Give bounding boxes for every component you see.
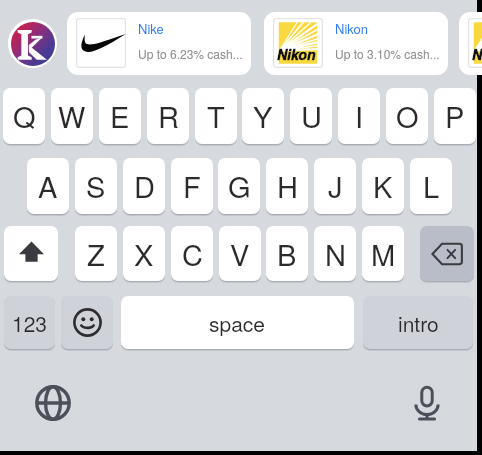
staticText: intro [398,308,439,338]
button[interactable]: P [434,88,476,144]
staticText: D [134,165,155,207]
button[interactable]: B [266,226,308,281]
staticText: U [301,95,322,137]
button[interactable]: U [290,88,332,144]
staticText: Nikon [277,44,316,64]
button[interactable]: V [219,226,261,281]
button[interactable]: Nike [67,12,251,75]
staticText: T [207,95,225,137]
button[interactable]: Nikon [459,12,482,75]
staticText: O [396,95,419,137]
staticText: W [58,95,86,137]
staticText: 123 [12,308,48,338]
staticText: M [371,233,396,275]
staticText: L [423,165,440,207]
button[interactable]: Backspace [420,226,474,281]
staticText: G [228,165,251,207]
button[interactable]: Q [3,88,45,144]
button[interactable]: Dictation [404,380,450,426]
staticText: I [355,95,364,137]
staticText: J [328,165,343,207]
staticText: N [325,233,346,275]
button[interactable]: N [314,226,356,281]
button[interactable]: R [147,88,189,144]
staticText: Nikon [335,19,368,38]
button[interactable]: I [338,88,380,144]
button[interactable]: E [99,88,141,144]
button[interactable]: space [121,296,354,349]
button[interactable]: M [362,226,404,281]
staticText: X [134,233,154,275]
button[interactable]: S [75,158,117,214]
staticText: B [277,233,297,275]
staticText: space [209,308,266,338]
staticText: R [158,95,179,137]
button[interactable]: Y [242,88,284,144]
button[interactable]: L [410,158,452,214]
staticText: K [373,165,393,207]
staticText: S [86,165,106,207]
button[interactable]: A [27,158,69,214]
button[interactable]: D [123,158,165,214]
staticText: H [277,165,298,207]
button[interactable]: W [51,88,93,144]
staticText: Z [87,233,105,275]
button[interactable]: J [314,158,356,214]
button[interactable]: Nikon [264,12,448,75]
staticText: Nike [138,19,164,38]
button[interactable]: O [386,88,428,144]
staticText: P [445,95,465,137]
button[interactable]: Karma [8,19,57,68]
button[interactable]: F [171,158,213,214]
staticText: V [230,233,250,275]
staticText: Y [253,95,273,137]
button[interactable]: 123 [4,296,55,349]
button[interactable]: T [195,88,237,144]
button[interactable]: Z [75,226,117,281]
button[interactable]: Emoji [61,296,113,349]
staticText: A [38,165,58,207]
button[interactable]: Shift [4,226,58,281]
staticText: Q [13,95,36,137]
staticText: Up to 6.23% cash... [138,45,243,62]
button[interactable]: K [362,158,404,214]
staticText: C [182,233,203,275]
staticText: F [183,165,201,207]
button[interactable]: G [218,158,260,214]
staticText: Up to 3.10% cash... [335,45,440,62]
button[interactable]: C [171,226,213,281]
staticText: Nikon [472,44,482,64]
button[interactable]: intro [363,296,473,349]
staticText: E [110,95,130,137]
button[interactable]: Next keyboard [30,380,76,426]
button[interactable]: X [123,226,165,281]
button[interactable]: H [266,158,308,214]
